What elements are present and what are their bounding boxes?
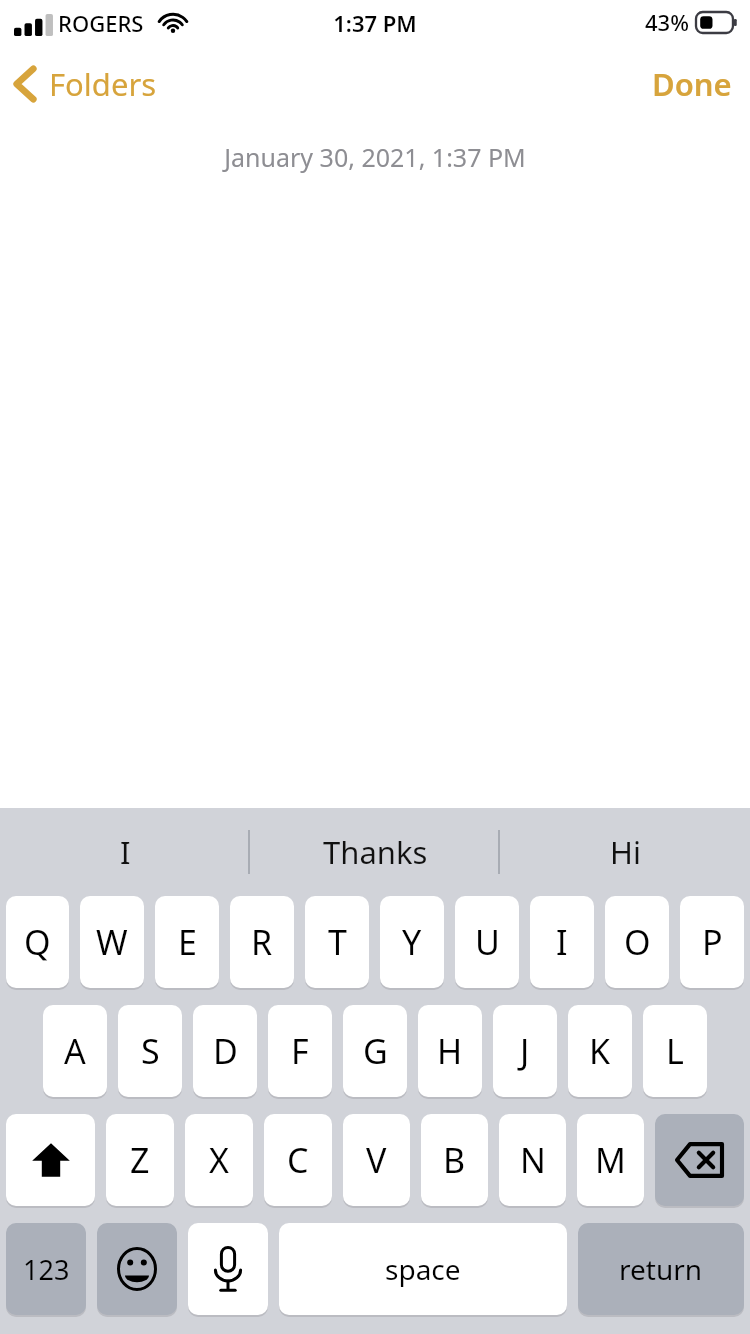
staticText: 43% <box>645 7 689 37</box>
staticText: F <box>291 1028 309 1074</box>
staticText: R <box>251 919 273 965</box>
staticText: space <box>385 1250 461 1288</box>
staticText: P <box>702 919 723 965</box>
staticText: O <box>624 919 651 965</box>
button[interactable]: space <box>279 1223 567 1315</box>
staticText: I <box>556 919 568 965</box>
staticText: Q <box>24 919 51 965</box>
staticText: E <box>178 919 197 965</box>
staticText: Hi <box>610 831 641 873</box>
staticText: D <box>213 1028 238 1074</box>
button[interactable]: Shift <box>6 1114 95 1206</box>
staticText: 1:37 PM <box>0 8 750 38</box>
button[interactable]: Hi <box>500 808 750 896</box>
staticText: V <box>366 1137 387 1183</box>
button[interactable]: Dictate <box>188 1223 268 1315</box>
button[interactable]: T <box>305 896 369 988</box>
button[interactable]: Q <box>6 896 69 988</box>
button[interactable]: L <box>643 1005 707 1097</box>
button[interactable]: R <box>230 896 294 988</box>
staticText: X <box>209 1137 229 1183</box>
staticText: ROGERS <box>58 8 144 38</box>
button[interactable]: O <box>605 896 669 988</box>
button[interactable]: M <box>577 1114 644 1206</box>
button[interactable]: E <box>155 896 219 988</box>
staticText: Folders <box>49 63 157 105</box>
button[interactable]: S <box>118 1005 182 1097</box>
button[interactable]: D <box>193 1005 257 1097</box>
button[interactable]: return <box>578 1223 744 1315</box>
staticText: B <box>443 1137 466 1183</box>
staticText: S <box>141 1028 160 1074</box>
button[interactable]: N <box>499 1114 566 1206</box>
button[interactable]: I <box>530 896 594 988</box>
staticText: C <box>287 1137 309 1183</box>
staticText: L <box>666 1028 684 1074</box>
button[interactable]: P <box>680 896 744 988</box>
staticText: Done <box>652 63 732 105</box>
button[interactable]: Folders <box>0 57 169 111</box>
staticText: J <box>520 1028 530 1074</box>
button[interactable]: J <box>493 1005 557 1097</box>
button[interactable]: K <box>568 1005 632 1097</box>
button[interactable]: Thanks <box>250 808 500 896</box>
staticText: A <box>64 1028 86 1074</box>
button[interactable]: C <box>264 1114 332 1206</box>
button[interactable]: I <box>0 808 250 896</box>
staticText: Thanks <box>323 831 428 873</box>
button[interactable]: B <box>421 1114 488 1206</box>
button[interactable]: Y <box>380 896 444 988</box>
staticText: January 30, 2021, 1:37 PM <box>0 140 750 174</box>
button[interactable]: G <box>343 1005 407 1097</box>
button[interactable]: F <box>268 1005 332 1097</box>
button[interactable]: Z <box>106 1114 174 1206</box>
staticText: H <box>437 1028 463 1074</box>
button[interactable]: X <box>185 1114 253 1206</box>
staticText: return <box>619 1250 703 1288</box>
staticText: N <box>520 1137 546 1183</box>
button[interactable]: Done <box>634 55 750 113</box>
staticText: K <box>589 1028 611 1074</box>
staticText: U <box>475 919 500 965</box>
staticText: G <box>363 1028 388 1074</box>
button[interactable]: V <box>343 1114 410 1206</box>
staticText: I <box>120 831 131 873</box>
button[interactable]: 123 <box>6 1223 86 1315</box>
staticText: W <box>96 919 128 965</box>
button[interactable]: W <box>80 896 144 988</box>
button[interactable]: U <box>455 896 519 988</box>
staticText: Y <box>402 919 422 965</box>
button[interactable]: H <box>418 1005 482 1097</box>
button[interactable]: A <box>43 1005 107 1097</box>
button[interactable]: Backspace <box>655 1114 744 1206</box>
staticText: T <box>328 919 347 965</box>
button[interactable]: Emoji <box>97 1223 177 1315</box>
staticText: 123 <box>23 1251 70 1288</box>
staticText: Z <box>130 1137 150 1183</box>
staticText: M <box>595 1137 626 1183</box>
